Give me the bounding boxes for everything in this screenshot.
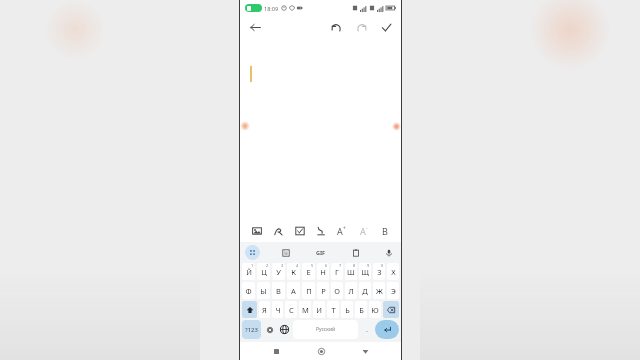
- staticText: GIF: [316, 249, 326, 256]
- button[interactable]: Э: [387, 282, 399, 299]
- staticText: Х: [391, 267, 396, 277]
- button[interactable]: П: [302, 282, 315, 299]
- button[interactable]: Enter: [375, 320, 399, 339]
- staticText: 4: [296, 263, 299, 268]
- staticText: Ю: [371, 305, 379, 315]
- staticText: Ш: [347, 267, 355, 277]
- staticText: Ь: [345, 305, 350, 315]
- button[interactable]: Undo: [327, 18, 345, 36]
- button[interactable]: Backspace: [383, 301, 399, 318]
- button[interactable]: Insert image: [247, 221, 266, 240]
- button[interactable]: Д: [359, 282, 371, 299]
- button[interactable]: Русский: [293, 320, 358, 339]
- button[interactable]: A: [354, 221, 373, 240]
- staticText: .: [366, 325, 368, 335]
- button[interactable]: С: [285, 301, 297, 318]
- staticText: 1: [251, 263, 254, 268]
- button[interactable]: Settings: [262, 320, 277, 339]
- button[interactable]: Л: [345, 282, 357, 299]
- button[interactable]: Redo: [352, 18, 370, 36]
- button[interactable]: Change language: [277, 320, 292, 339]
- button[interactable]: Checklist: [290, 221, 309, 240]
- button[interactable]: Back: [246, 18, 264, 36]
- staticText: 9: [367, 263, 370, 268]
- button[interactable]: Ю: [369, 301, 381, 318]
- staticText: Э: [391, 286, 396, 296]
- button[interactable]: А: [287, 282, 300, 299]
- staticText: Ы: [260, 286, 267, 296]
- staticText: Л: [348, 286, 354, 296]
- button[interactable]: Highlight: [311, 221, 330, 240]
- button[interactable]: Е: [302, 263, 315, 280]
- button[interactable]: Б: [355, 301, 367, 318]
- staticText: 2: [266, 263, 269, 268]
- button[interactable]: Ф: [242, 282, 255, 299]
- staticText: 18:09: [264, 5, 279, 12]
- button[interactable]: Voice input: [381, 245, 396, 260]
- button[interactable]: ?123: [242, 320, 261, 339]
- staticText: Е: [306, 267, 311, 277]
- staticText: +: [343, 225, 346, 232]
- button[interactable]: Т: [327, 301, 339, 318]
- button[interactable]: A: [332, 221, 351, 240]
- staticText: З: [377, 267, 382, 277]
- staticText: Й: [246, 267, 252, 277]
- button[interactable]: Toolbar: [245, 245, 260, 260]
- staticText: Г: [335, 267, 339, 277]
- button[interactable]: Й: [242, 263, 255, 280]
- button[interactable]: В: [272, 282, 285, 299]
- button[interactable]: Hide keyboard: [357, 343, 373, 359]
- button[interactable]: Ш: [345, 263, 357, 280]
- staticText: В: [276, 286, 281, 296]
- button[interactable]: Щ: [359, 263, 371, 280]
- staticText: B: [382, 225, 388, 237]
- button[interactable]: Х: [387, 263, 399, 280]
- staticText: 6: [325, 263, 328, 268]
- button[interactable]: Done: [377, 18, 395, 36]
- button[interactable]: О: [331, 282, 343, 299]
- staticText: Щ: [361, 267, 369, 277]
- staticText: Я: [262, 305, 267, 315]
- staticText: 8: [353, 263, 356, 268]
- staticText: Ч: [275, 305, 281, 315]
- staticText: Ф: [245, 286, 252, 296]
- staticText: 7: [339, 263, 342, 268]
- button[interactable]: У: [272, 263, 285, 280]
- button[interactable]: Я: [259, 301, 270, 318]
- button[interactable]: Home: [313, 343, 329, 359]
- staticText: Ж: [376, 286, 383, 296]
- staticText: И: [316, 305, 322, 315]
- staticText: ?123: [245, 326, 258, 334]
- staticText: 0: [381, 263, 384, 268]
- button[interactable]: GIF: [312, 243, 330, 261]
- staticText: 3: [281, 263, 284, 268]
- staticText: П: [306, 286, 312, 296]
- button[interactable]: И: [313, 301, 325, 318]
- button[interactable]: Ж: [373, 282, 385, 299]
- staticText: A: [360, 225, 366, 237]
- staticText: К: [291, 267, 296, 277]
- button[interactable]: Clipboard: [348, 245, 363, 260]
- button[interactable]: З: [373, 263, 385, 280]
- button[interactable]: Stickers: [278, 245, 293, 260]
- button[interactable]: B: [375, 221, 394, 240]
- staticText: Б: [359, 305, 364, 315]
- button[interactable]: Р: [317, 282, 329, 299]
- button[interactable]: К: [287, 263, 300, 280]
- button[interactable]: Г: [331, 263, 343, 280]
- staticText: A: [337, 225, 343, 237]
- button[interactable]: Recents: [268, 343, 284, 359]
- button[interactable]: Н: [317, 263, 329, 280]
- staticText: У: [276, 267, 281, 277]
- button[interactable]: Ч: [272, 301, 283, 318]
- button[interactable]: М: [299, 301, 311, 318]
- staticText: Р: [321, 286, 326, 296]
- staticText: -: [366, 225, 368, 232]
- button[interactable]: Ь: [341, 301, 353, 318]
- button[interactable]: Ы: [257, 282, 270, 299]
- staticText: Н: [320, 267, 326, 277]
- button[interactable]: Draw: [268, 221, 287, 240]
- button[interactable]: .: [359, 320, 374, 339]
- button[interactable]: Ц: [257, 263, 270, 280]
- button[interactable]: Shift: [242, 301, 257, 318]
